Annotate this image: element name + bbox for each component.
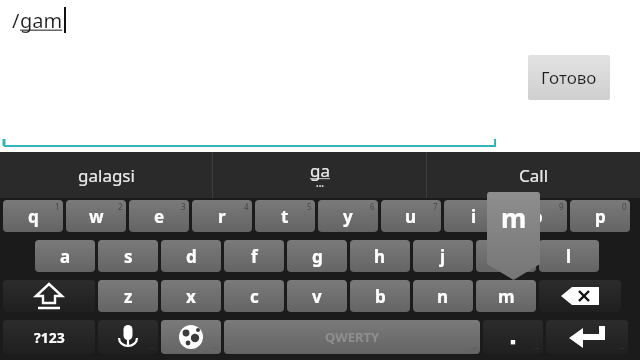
staticText: w [89, 205, 104, 228]
button[interactable]: s [98, 240, 158, 272]
staticText: f [251, 245, 258, 268]
staticText: QWERTY [325, 328, 380, 346]
staticText: i [471, 205, 477, 228]
staticText: ?123 [34, 328, 65, 347]
button[interactable]: f [224, 240, 284, 272]
staticText: 1 [55, 201, 60, 212]
staticText: ··· [471, 344, 477, 354]
staticText: x [186, 285, 196, 308]
staticText: 9 [559, 201, 564, 212]
button[interactable]: ga [213, 152, 426, 198]
button[interactable]: w [66, 200, 126, 232]
staticText: c [250, 285, 259, 308]
staticText: j [440, 245, 446, 268]
button[interactable]: Voice input [98, 320, 158, 354]
staticText: q [28, 205, 39, 228]
button[interactable]: t [255, 200, 315, 232]
staticText: v [312, 285, 322, 308]
button[interactable]: y [318, 200, 378, 232]
button[interactable]: Enter [546, 320, 628, 354]
button[interactable]: Готово [528, 55, 610, 100]
staticText: gam [20, 7, 63, 34]
staticText: galagsi [78, 164, 135, 187]
staticText: s [124, 245, 133, 268]
staticText: t [281, 205, 289, 228]
staticText: Call [519, 164, 549, 187]
staticText: 6 [370, 201, 375, 212]
staticText: / [12, 7, 20, 34]
button[interactable]: u [381, 200, 441, 232]
button[interactable]: k [476, 240, 536, 272]
button[interactable]: o [507, 200, 567, 232]
button[interactable]: Backspace [539, 280, 621, 312]
staticText: u [405, 205, 417, 228]
button[interactable]: v [287, 280, 347, 312]
staticText: Готово [541, 66, 597, 89]
staticText: ··· [619, 344, 625, 354]
button[interactable]: h [350, 240, 410, 272]
button[interactable]: m [476, 280, 536, 312]
staticText: 4 [244, 201, 249, 212]
staticText: n [437, 285, 449, 308]
staticText: 2 [118, 201, 123, 212]
staticText: d [186, 245, 197, 268]
button[interactable]: n [413, 280, 473, 312]
staticText: 0 [622, 201, 627, 212]
button[interactable]: l [539, 240, 599, 272]
button[interactable]: e [129, 200, 189, 232]
staticText: g [312, 245, 323, 268]
staticText: y [343, 205, 353, 228]
staticText: h [374, 245, 386, 268]
staticText: e [154, 205, 165, 228]
staticText: 5 [307, 201, 312, 212]
button[interactable]: Change language [161, 320, 221, 354]
staticText: 7 [433, 201, 438, 212]
button[interactable]: QWERTY [224, 320, 480, 354]
button[interactable]: z [98, 280, 158, 312]
button[interactable]: r [192, 200, 252, 232]
staticText: l [566, 245, 572, 268]
button[interactable]: galagsi [0, 152, 212, 198]
button[interactable]: b [350, 280, 410, 312]
staticText: ••• [316, 182, 324, 192]
staticText: z [124, 285, 133, 308]
button[interactable]: q [3, 200, 63, 232]
button[interactable]: d [161, 240, 221, 272]
button[interactable]: Period [483, 320, 543, 354]
button[interactable]: a [35, 240, 95, 272]
staticText: r [218, 205, 226, 228]
staticText: ··· [149, 344, 155, 354]
staticText: m [501, 200, 527, 235]
button[interactable]: Call [427, 152, 640, 198]
button[interactable]: Shift [3, 280, 95, 312]
staticText: p [595, 205, 606, 228]
button[interactable]: ?123 [3, 320, 95, 354]
staticText: b [375, 285, 386, 308]
button[interactable]: c [224, 280, 284, 312]
staticText: ··· [212, 344, 218, 354]
staticText: o [532, 205, 543, 228]
staticText: m [498, 285, 515, 308]
button[interactable]: i [444, 200, 504, 232]
button[interactable]: x [161, 280, 221, 312]
staticText: ga [310, 159, 330, 182]
button[interactable]: g [287, 240, 347, 272]
staticText: a [60, 245, 71, 268]
button[interactable]: p [570, 200, 630, 232]
button[interactable]: j [413, 240, 473, 272]
staticText: ··· [534, 344, 540, 354]
staticText: 3 [181, 201, 186, 212]
staticText: / [12, 7, 20, 34]
